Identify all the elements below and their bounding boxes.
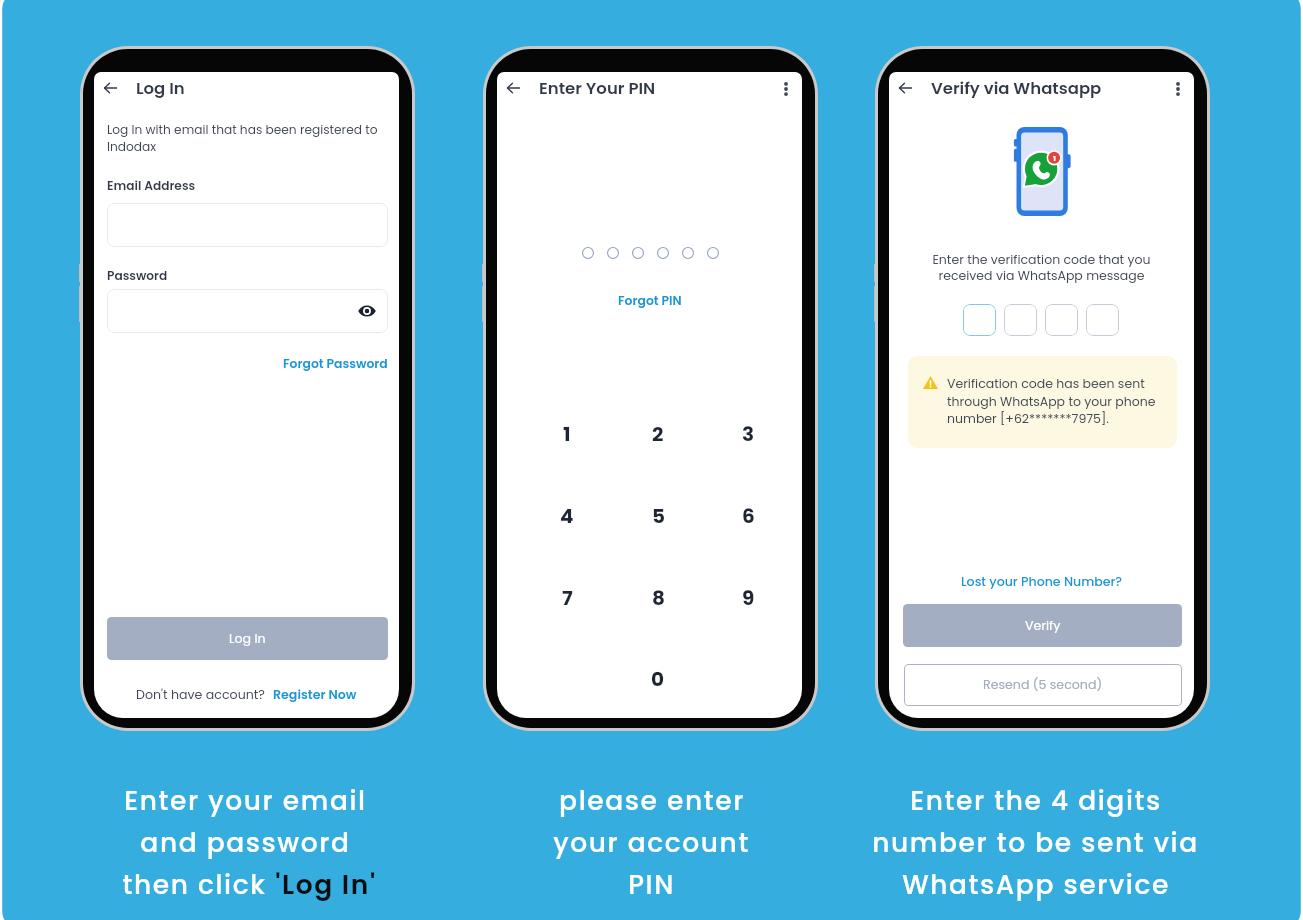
- staticText: Enter Your PIN: [539, 77, 656, 100]
- button[interactable]: More options: [774, 77, 798, 101]
- button[interactable]: 4: [537, 490, 597, 542]
- button[interactable]: [963, 304, 996, 336]
- staticText: Enter the verification code that you rec…: [889, 251, 1194, 284]
- button[interactable]: [1004, 304, 1037, 336]
- button[interactable]: 8: [628, 572, 688, 624]
- staticText: Verify: [1025, 617, 1061, 635]
- staticText: PIN: [628, 866, 675, 903]
- staticText: 6: [742, 502, 755, 530]
- staticText: 9: [742, 584, 755, 612]
- button[interactable]: 6: [718, 490, 778, 542]
- staticText: your account: [553, 824, 750, 861]
- staticText: 8: [652, 584, 665, 612]
- button[interactable]: Back: [500, 75, 526, 101]
- button[interactable]: 3: [718, 408, 778, 460]
- button[interactable]: 9: [718, 572, 778, 624]
- button[interactable]: Register Now: [273, 686, 357, 704]
- staticText: 4: [560, 502, 574, 530]
- staticText: Resend (5 second): [983, 676, 1103, 694]
- staticText: Email Address: [107, 177, 196, 194]
- staticText: 'Log In': [275, 866, 377, 903]
- button[interactable]: Forgot Password: [283, 355, 388, 372]
- staticText: 0: [651, 665, 665, 693]
- staticText: Verification code has been sent through …: [947, 375, 1169, 427]
- staticText: Enter the 4 digits: [910, 782, 1162, 819]
- button[interactable]: Show password: [107, 289, 388, 333]
- staticText: 7: [562, 584, 573, 612]
- button[interactable]: [1086, 304, 1119, 336]
- button[interactable]: 7: [537, 572, 597, 624]
- staticText: 1: [563, 420, 571, 448]
- button[interactable]: 0: [628, 653, 688, 705]
- button[interactable]: [107, 203, 388, 247]
- button[interactable]: Lost your Phone Number?: [961, 573, 1123, 591]
- button[interactable]: More options: [1166, 77, 1190, 101]
- staticText: WhatsApp service: [902, 866, 1170, 903]
- staticText: 5: [652, 502, 665, 530]
- staticText: and password: [140, 824, 351, 861]
- staticText: Enter your email: [124, 782, 367, 819]
- staticText: 1: [1053, 153, 1056, 163]
- staticText: 2: [652, 420, 664, 448]
- staticText: Password: [107, 267, 168, 284]
- staticText: 3: [742, 420, 755, 448]
- staticText: Log In: [229, 630, 266, 648]
- staticText: then click: [114, 866, 275, 903]
- button[interactable]: Forgot PIN: [618, 292, 682, 309]
- staticText: please enter: [559, 782, 745, 819]
- button[interactable]: [1045, 304, 1078, 336]
- button[interactable]: 1: [537, 408, 597, 460]
- staticText: Log In: [136, 77, 185, 100]
- button[interactable]: Back: [892, 75, 918, 101]
- staticText: Don't have account?: [136, 686, 265, 704]
- button[interactable]: 5: [628, 490, 688, 542]
- staticText: Log In with email that has been register…: [107, 121, 388, 155]
- button[interactable]: 2: [628, 408, 688, 460]
- button[interactable]: Show password: [355, 299, 379, 323]
- button[interactable]: Log In: [107, 617, 388, 660]
- button[interactable]: Resend (5 second): [904, 664, 1182, 706]
- button[interactable]: Verify: [903, 604, 1182, 647]
- staticText: Verify via Whatsapp: [931, 77, 1102, 100]
- staticText: number to be sent via: [872, 824, 1199, 861]
- button[interactable]: Back: [97, 75, 123, 101]
